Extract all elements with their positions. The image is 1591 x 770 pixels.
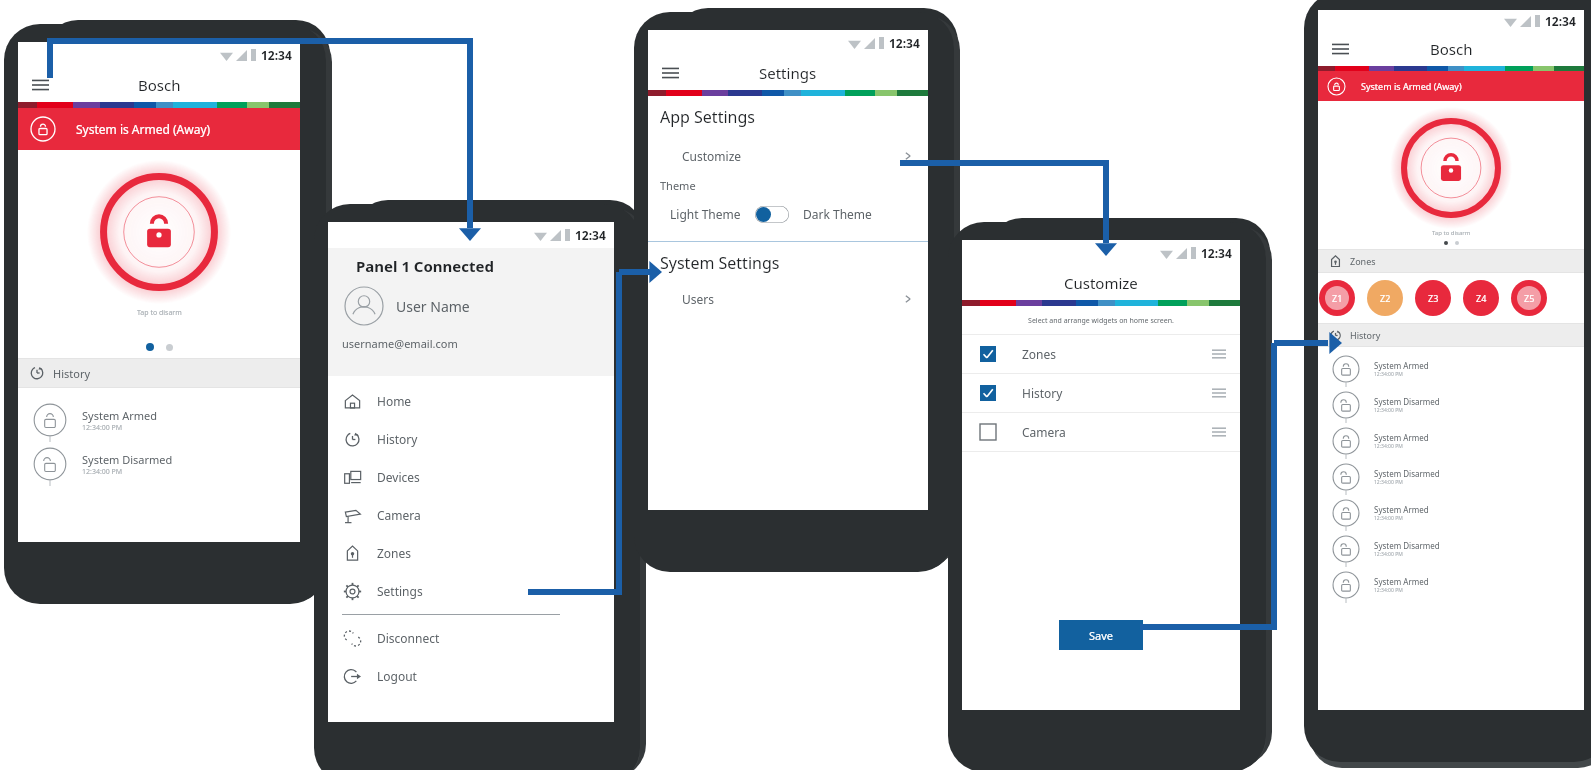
staticText: System Armed [1374, 360, 1429, 371]
button[interactable]: Users [648, 284, 928, 314]
staticText: System is Armed (Away) [1361, 80, 1462, 92]
staticText: 12:34:00 PM [1374, 515, 1403, 522]
button[interactable]: System Disarmed [1318, 387, 1584, 423]
staticText: 12:34:00 PM [82, 467, 123, 477]
other: Reorder Zones [1212, 349, 1226, 359]
button[interactable]: Z2 [1367, 280, 1403, 316]
button[interactable]: System Disarmed [18, 442, 300, 486]
staticText: Dark Theme [803, 206, 872, 222]
button[interactable]: Zones [962, 335, 1240, 373]
staticText: System Armed [82, 408, 158, 423]
staticText: Z2 [1380, 292, 1391, 304]
staticText: Light Theme [670, 206, 741, 222]
button[interactable]: Z4 [1463, 280, 1499, 316]
button[interactable]: Settings [328, 572, 614, 610]
staticText: Select and arrange widgets on home scree… [962, 316, 1240, 326]
button[interactable]: Z5 [1511, 280, 1547, 316]
staticText: Home [377, 393, 412, 409]
button[interactable]: Tap to disarm [1390, 107, 1512, 229]
other: Reorder Camera [1212, 427, 1226, 437]
staticText: System Armed [1374, 504, 1429, 515]
staticText: 12:34:00 PM [1374, 443, 1403, 450]
button[interactable]: Camera [962, 413, 1240, 451]
staticText: User Name [396, 297, 470, 316]
button[interactable]: System is Armed (Away) [18, 108, 300, 150]
button[interactable]: Z3 [1415, 280, 1451, 316]
staticText: Tap to disarm [1432, 229, 1471, 237]
staticText: Zones [377, 545, 412, 561]
button[interactable]: Theme toggle [755, 206, 789, 223]
button[interactable]: Logout [328, 657, 614, 695]
button[interactable]: Save [1059, 620, 1143, 650]
staticText: Z1 [1332, 292, 1343, 304]
staticText: 12:34:00 PM [1374, 587, 1403, 594]
staticText: Zones [1022, 346, 1057, 362]
staticText: System is Armed (Away) [76, 121, 211, 137]
button[interactable]: History [328, 420, 614, 458]
staticText: Save [1089, 628, 1114, 643]
staticText: Z4 [1476, 292, 1487, 304]
staticText: 12:34:00 PM [82, 423, 123, 433]
staticText: Customize [682, 148, 742, 164]
button[interactable]: Open navigation menu [658, 61, 682, 85]
staticText: Settings [759, 63, 817, 83]
staticText: Camera [377, 507, 421, 523]
button[interactable]: System is Armed (Away) [1318, 71, 1584, 101]
button[interactable]: System Disarmed [1318, 531, 1584, 567]
staticText: 12:34:00 PM [1374, 407, 1403, 414]
button[interactable]: Zones [1318, 250, 1584, 272]
button[interactable]: Disconnect [328, 619, 614, 657]
button[interactable]: History [1318, 324, 1584, 346]
button[interactable]: System Armed [1318, 495, 1584, 531]
button[interactable]: Open navigation menu [1328, 37, 1352, 61]
staticText: Z5 [1524, 292, 1535, 304]
staticText: History [53, 366, 91, 381]
button[interactable]: Z1 [1319, 280, 1355, 316]
staticText: Tap to disarm [137, 308, 182, 318]
staticText: 12:34 [889, 35, 920, 51]
staticText: System Disarmed [82, 452, 173, 467]
staticText: 12:34:00 PM [1374, 371, 1403, 378]
button[interactable]: Devices [328, 458, 614, 496]
staticText: History [1350, 329, 1381, 341]
staticText: System Armed [1374, 576, 1429, 587]
button[interactable]: Camera [328, 496, 614, 534]
staticText: 12:34 [1545, 13, 1576, 29]
staticText: Camera [1022, 424, 1066, 440]
button[interactable]: Customize [648, 140, 928, 172]
staticText: 12:34 [575, 227, 606, 243]
staticText: System Disarmed [1374, 468, 1440, 479]
staticText: Panel 1 Connected [356, 256, 495, 276]
staticText: System Armed [1374, 432, 1429, 443]
staticText: System Settings [660, 252, 780, 274]
staticText: 12:34:00 PM [1374, 479, 1403, 486]
button[interactable]: System Armed [1318, 351, 1584, 387]
staticText: Settings [377, 583, 423, 599]
staticText: System Disarmed [1374, 396, 1440, 407]
button[interactable]: System Armed [18, 398, 300, 442]
staticText: 12:34:00 PM [1374, 551, 1403, 558]
button[interactable]: Zones [328, 534, 614, 572]
button[interactable]: System Disarmed [1318, 459, 1584, 495]
button[interactable]: Open navigation menu [28, 73, 52, 97]
other: Reorder History [1212, 388, 1226, 398]
staticText: Customize [1064, 273, 1138, 293]
staticText: History [1022, 385, 1063, 401]
button[interactable]: Tap to disarm [87, 160, 231, 304]
staticText: 12:34 [261, 47, 292, 63]
button[interactable]: History [962, 374, 1240, 412]
staticText: Z3 [1428, 292, 1439, 304]
button[interactable]: History [18, 359, 300, 387]
staticText: 12:34 [1201, 245, 1232, 261]
staticText: Theme [660, 178, 696, 193]
staticText: Disconnect [377, 630, 440, 646]
button[interactable]: Home [328, 382, 614, 420]
button[interactable]: System Armed [1318, 423, 1584, 459]
staticText: Logout [377, 668, 417, 684]
staticText: Devices [377, 469, 420, 485]
staticText: Users [682, 291, 714, 307]
staticText: App Settings [660, 106, 755, 128]
staticText: System Disarmed [1374, 540, 1440, 551]
button[interactable]: System Armed [1318, 567, 1584, 603]
staticText: Bosch [138, 75, 181, 95]
